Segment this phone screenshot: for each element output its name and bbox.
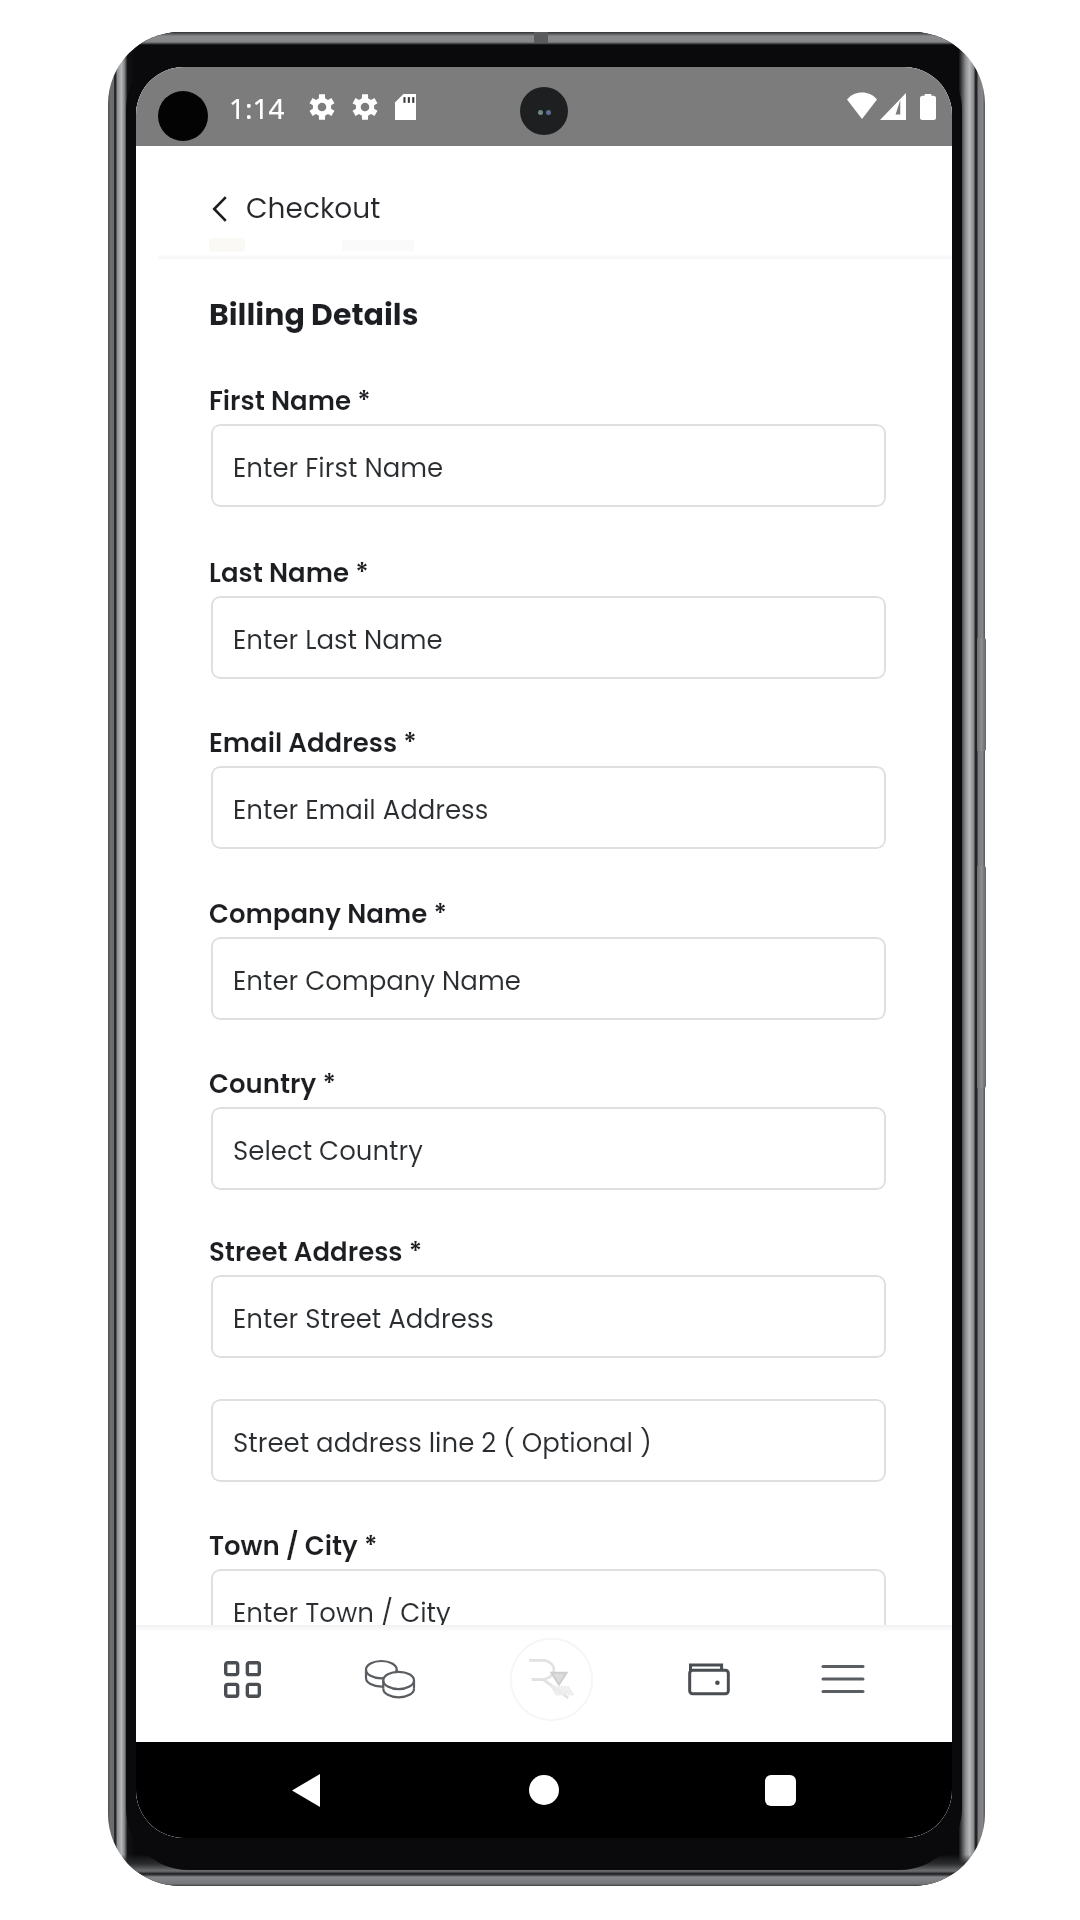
button[interactable]: Transactions [342,1629,438,1729]
button[interactable]: Checkout [213,189,391,228]
button[interactable]: Back [272,1742,340,1838]
staticText: Checkout [246,189,381,228]
staticText: Email Address * [209,725,417,761]
button[interactable]: Enter First Name [211,424,886,507]
staticText: Enter Street Address [233,1301,494,1337]
button[interactable]: Recents [746,1742,814,1838]
button[interactable]: Select Country [211,1107,886,1190]
button[interactable]: Enter Company Name [211,937,886,1020]
staticText: Country * [209,1066,336,1102]
staticText: Town / City * [209,1528,378,1564]
staticText: 1:14 [229,89,285,127]
button[interactable]: Enter Street Address [211,1275,886,1358]
staticText: Street address line 2 ( Optional ) [233,1425,652,1461]
button[interactable]: Street address line 2 ( Optional ) [211,1399,886,1482]
staticText: Street Address * [209,1234,423,1270]
staticText: Select Country [233,1133,423,1169]
button[interactable]: Enter Email Address [211,766,886,849]
staticText: Last Name * [209,555,369,591]
staticText: Enter Last Name [233,622,443,658]
button[interactable]: Enter Last Name [211,596,886,679]
button[interactable]: Menu [795,1629,891,1729]
button[interactable]: Enter Town / City [211,1569,886,1652]
button[interactable]: Dashboard [194,1629,290,1729]
staticText: Company Name * [209,896,447,932]
button[interactable]: Home [503,1629,599,1729]
staticText: Enter Email Address [233,792,489,828]
staticText: Enter First Name [233,450,444,486]
staticText: Billing Details [209,294,419,336]
button[interactable]: Wallet [661,1629,757,1729]
staticText: Enter Company Name [233,963,521,999]
staticText: First Name * [209,383,371,419]
staticText: Enter Town / City [233,1595,451,1631]
button[interactable]: Home [510,1742,578,1838]
